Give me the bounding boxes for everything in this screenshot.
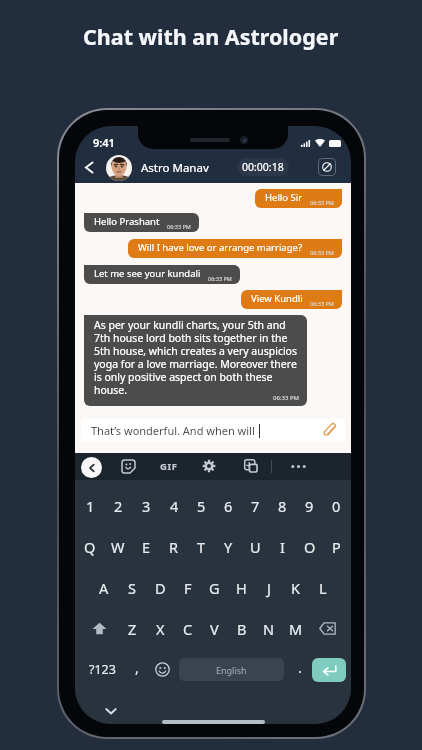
button[interactable]: N — [255, 608, 282, 649]
staticText: T — [197, 537, 206, 557]
staticText: Z — [128, 619, 137, 639]
button[interactable]: E — [132, 526, 160, 567]
staticText: 06:33 PM — [273, 394, 299, 402]
button[interactable]: . — [288, 649, 312, 690]
staticText: H — [236, 578, 247, 598]
staticText: I — [280, 537, 285, 557]
button[interactable]: Shift — [80, 608, 118, 649]
button[interactable]: 3 — [132, 485, 160, 526]
button[interactable]: English — [179, 658, 284, 681]
staticText: GIF — [160, 460, 178, 473]
button[interactable]: C — [174, 608, 201, 649]
button[interactable]: O — [296, 526, 323, 567]
button[interactable]: B — [228, 608, 255, 649]
button[interactable]: U — [242, 526, 269, 567]
staticText: 06:33 PM — [167, 223, 191, 230]
button[interactable]: 5 — [188, 485, 215, 526]
button[interactable]: Backspace — [309, 608, 346, 649]
staticText: L — [319, 578, 327, 598]
button[interactable]: X — [146, 608, 174, 649]
button[interactable]: L — [309, 567, 336, 608]
staticText: C — [183, 619, 193, 639]
staticText: Astro Manav — [141, 160, 209, 176]
button[interactable]: S — [118, 567, 146, 608]
staticText: V — [210, 619, 219, 639]
staticText: 06:33 PM — [310, 199, 334, 206]
button[interactable]: As per your kundli charts, your 5th and … — [84, 315, 307, 406]
staticText: U — [250, 537, 261, 557]
button[interactable]: Y — [215, 526, 242, 567]
staticText: 9:41 — [93, 135, 115, 150]
button[interactable]: 7 — [242, 485, 269, 526]
staticText: W — [111, 537, 125, 557]
staticText: M — [289, 619, 303, 639]
button[interactable]: Emoji — [149, 649, 175, 690]
button[interactable]: A — [90, 567, 118, 608]
staticText: . — [298, 658, 302, 677]
staticText: S — [128, 578, 136, 598]
staticText: O — [304, 537, 316, 557]
button[interactable]: Astrologer profile — [106, 155, 132, 181]
button[interactable]: 8 — [269, 485, 296, 526]
staticText: Hello Prashant — [94, 215, 160, 228]
staticText: Chat with an Astrologer — [83, 22, 339, 51]
button[interactable]: K — [282, 567, 309, 608]
button[interactable]: 00:00:18 — [237, 158, 289, 176]
button[interactable]: , — [125, 649, 149, 690]
staticText: X — [156, 619, 165, 639]
button[interactable]: Translate — [244, 459, 258, 473]
button[interactable]: View Kundli — [241, 290, 342, 309]
button[interactable]: Mute chat — [318, 158, 336, 176]
staticText: Q — [84, 537, 96, 557]
button[interactable]: D — [146, 567, 174, 608]
button[interactable]: P — [323, 526, 350, 567]
staticText: 00:00:18 — [242, 160, 284, 174]
button[interactable]: More options — [291, 462, 306, 471]
button[interactable]: That’s wonderful. And when will — [81, 419, 345, 442]
button[interactable]: 2 — [104, 485, 132, 526]
staticText: Hello Sir — [265, 191, 303, 204]
button[interactable]: 9 — [296, 485, 323, 526]
button[interactable]: Let me see your kundali — [84, 265, 240, 284]
button[interactable]: 1 — [76, 485, 104, 526]
button[interactable]: Hello Prashant — [84, 213, 199, 232]
staticText: F — [184, 578, 192, 598]
staticText: Y — [224, 537, 233, 557]
button[interactable]: Settings — [202, 459, 216, 473]
button[interactable]: H — [228, 567, 255, 608]
staticText: G — [209, 578, 220, 598]
staticText: 3 — [142, 496, 151, 516]
button[interactable]: GIF — [160, 460, 178, 473]
button[interactable]: Q — [76, 526, 104, 567]
staticText: 5 — [197, 496, 206, 516]
button[interactable]: F — [174, 567, 201, 608]
staticText: 0 — [332, 496, 341, 516]
button[interactable]: M — [282, 608, 309, 649]
staticText: 8 — [278, 496, 287, 516]
button[interactable]: Hello Sir — [255, 189, 342, 208]
button[interactable]: V — [201, 608, 228, 649]
staticText: Let me see your kundali — [94, 267, 201, 280]
staticText: Will I have love or arrange marriage? — [138, 241, 303, 254]
staticText: K — [291, 578, 300, 598]
button[interactable]: Enter — [312, 658, 346, 682]
staticText: J — [267, 578, 271, 598]
button[interactable]: J — [255, 567, 282, 608]
button[interactable]: G — [201, 567, 228, 608]
staticText: 6 — [224, 496, 233, 516]
button[interactable]: W — [104, 526, 132, 567]
staticText: B — [237, 619, 247, 639]
button[interactable]: 6 — [215, 485, 242, 526]
button[interactable]: Back — [82, 160, 97, 175]
button[interactable]: Will I have love or arrange marriage? — [128, 239, 342, 258]
button[interactable]: Stickers — [122, 460, 135, 473]
button[interactable]: Collapse toolbar — [81, 457, 102, 478]
button[interactable]: 0 — [323, 485, 350, 526]
button[interactable]: Hide keyboard — [104, 704, 118, 718]
button[interactable]: I — [269, 526, 296, 567]
button[interactable]: T — [188, 526, 215, 567]
button[interactable]: R — [160, 526, 188, 567]
button[interactable]: ?123 — [80, 649, 125, 690]
button[interactable]: Z — [118, 608, 146, 649]
button[interactable]: 4 — [160, 485, 188, 526]
